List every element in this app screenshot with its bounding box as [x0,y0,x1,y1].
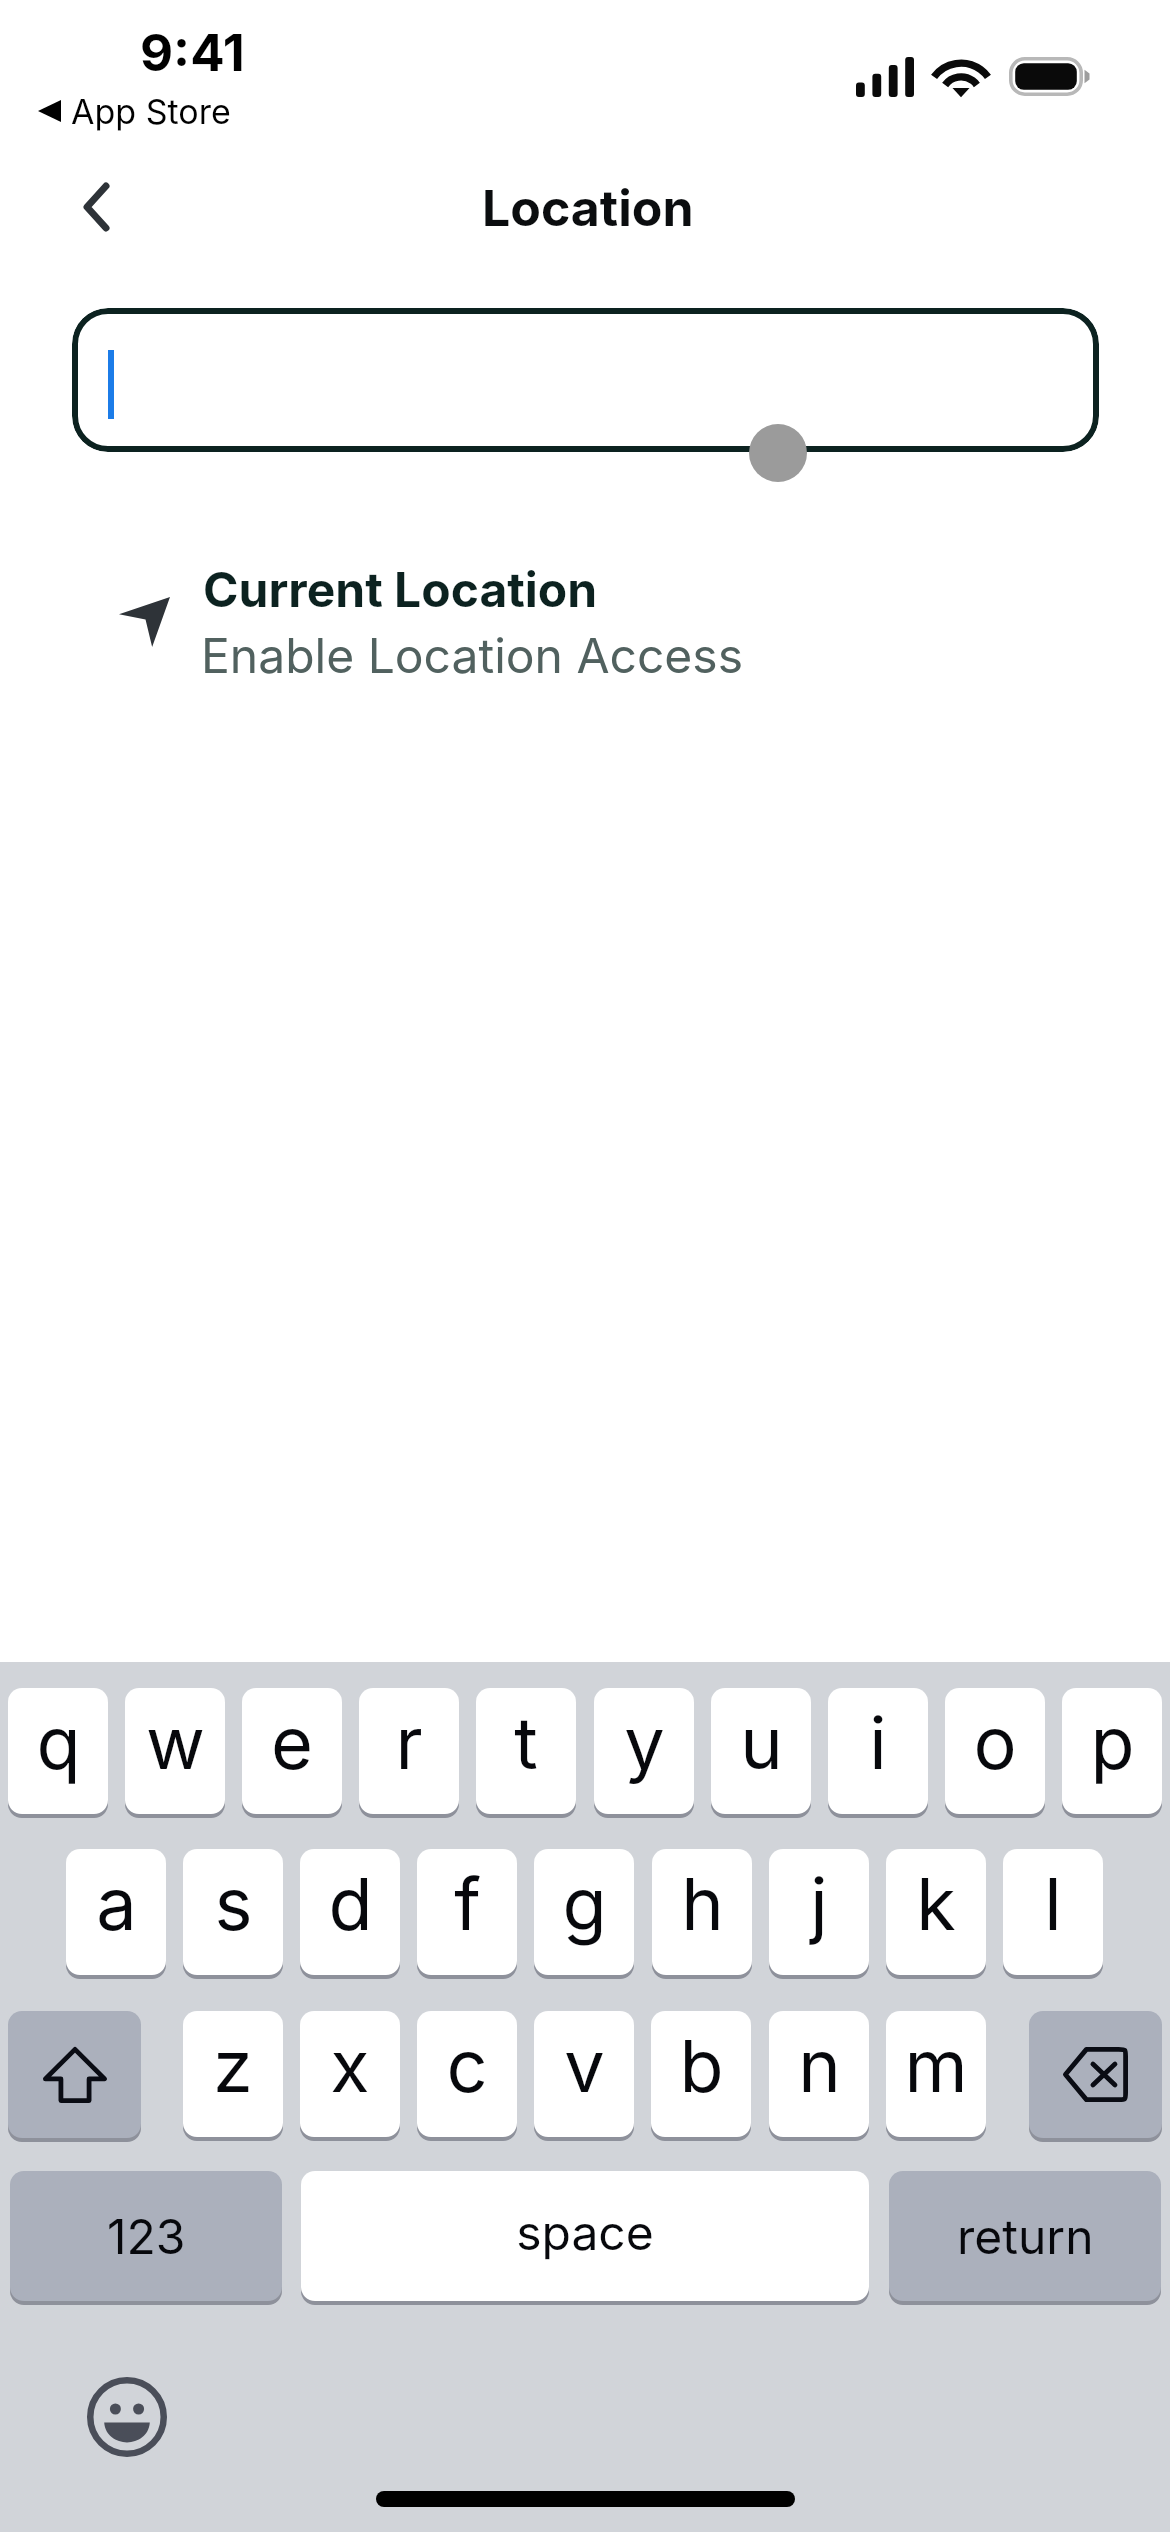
staticText: y [624,1699,665,1786]
button[interactable]: g [534,1849,634,1975]
button[interactable]: Back [36,155,140,259]
staticText: t [514,1699,538,1786]
staticText: r [395,1699,423,1786]
button[interactable]: w [125,1688,225,1814]
button[interactable]: Search location [72,308,1099,452]
staticText: x [330,2022,370,2109]
button[interactable]: c [417,2011,517,2137]
staticText: d [328,1860,373,1947]
staticText: o [973,1699,1017,1786]
button[interactable]: s [183,1849,283,1975]
staticText: n [798,2022,841,2109]
button[interactable]: Backspace [1029,2011,1162,2138]
button[interactable]: q [8,1688,108,1814]
staticText: return [957,2207,1094,2265]
button[interactable]: j [769,1849,869,1975]
button[interactable]: o [945,1688,1045,1814]
button[interactable]: y [594,1688,694,1814]
staticText: e [271,1699,313,1786]
button[interactable]: 123 [10,2171,282,2301]
staticText: h [681,1860,724,1947]
staticText: j [810,1860,828,1947]
button[interactable]: z [183,2011,283,2137]
button[interactable]: m [886,2011,986,2137]
staticText: q [36,1699,81,1786]
staticText: v [564,2022,605,2109]
staticText: App Store [71,91,231,132]
button[interactable]: d [300,1849,400,1975]
button[interactable]: Shift [8,2011,141,2138]
staticText: c [446,2022,488,2109]
button[interactable]: a [66,1849,166,1975]
staticText: a [96,1860,137,1947]
staticText: u [740,1699,783,1786]
staticText: l [1044,1860,1062,1947]
button[interactable]: e [242,1688,342,1814]
staticText: s [214,1860,253,1947]
staticText: Current Location [203,560,598,618]
button[interactable]: n [769,2011,869,2137]
button[interactable]: h [652,1849,752,1975]
button[interactable]: i [828,1688,928,1814]
button[interactable]: Back to App Store [32,85,236,137]
button[interactable]: Emoji keyboard [87,2377,167,2457]
staticText: p [1090,1699,1135,1786]
staticText: Location [482,178,694,238]
button[interactable]: k [886,1849,986,1975]
button[interactable]: l [1003,1849,1103,1975]
button[interactable]: b [651,2011,751,2137]
staticText: k [916,1860,956,1947]
staticText: 123 [107,2207,186,2265]
staticText: w [146,1699,205,1786]
staticText: z [213,2022,253,2109]
staticText: space [516,2203,654,2261]
button[interactable]: space [301,2171,869,2301]
button[interactable]: r [359,1688,459,1814]
staticText: b [679,2022,724,2109]
button[interactable]: v [534,2011,634,2137]
button[interactable]: p [1062,1688,1162,1814]
staticText: 9:41 [140,22,245,84]
button[interactable]: f [417,1849,517,1975]
staticText: g [562,1860,607,1947]
button[interactable]: return [889,2171,1161,2301]
staticText: Enable Location Access [201,626,744,684]
staticText: f [454,1860,481,1947]
button[interactable]: Current Location [0,540,1170,710]
button[interactable]: t [476,1688,576,1814]
staticText: m [904,2022,968,2109]
button[interactable]: x [300,2011,400,2137]
staticText: i [869,1699,887,1786]
button[interactable]: u [711,1688,811,1814]
